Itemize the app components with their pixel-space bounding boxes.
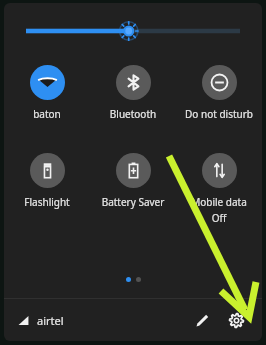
button[interactable]: airtel	[16, 307, 66, 334]
staticText: baton	[4, 107, 90, 121]
staticText: Do not disturb	[176, 107, 262, 121]
button[interactable]: Do not disturb	[176, 59, 262, 121]
button[interactable]: Bluetooth	[90, 59, 176, 121]
staticText: Off	[176, 211, 262, 225]
staticText: airtel	[37, 313, 64, 328]
staticText: Flashlight	[4, 195, 90, 209]
staticText: Bluetooth	[90, 107, 176, 121]
button[interactable]: Edit	[188, 306, 216, 334]
button[interactable]: Flashlight	[4, 147, 90, 209]
button[interactable]: Brightness	[4, 3, 262, 59]
staticText: Battery Saver	[90, 195, 176, 209]
button[interactable]: baton	[4, 59, 90, 121]
button[interactable]: Settings	[222, 306, 250, 334]
button[interactable]: Battery Saver	[90, 147, 176, 209]
staticText: Mobile data	[176, 195, 262, 209]
button[interactable]: Mobile data	[176, 147, 262, 225]
